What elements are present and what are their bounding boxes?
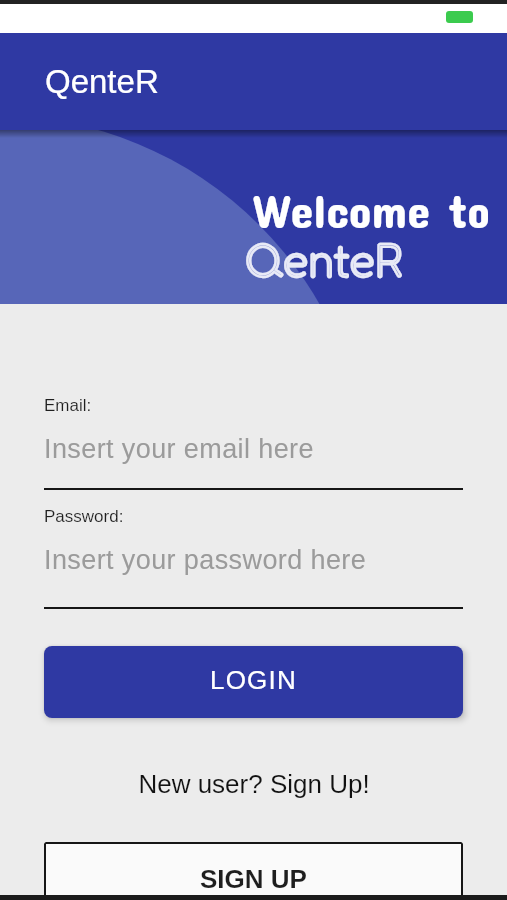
staticText: Password:	[44, 507, 124, 526]
staticText: QenteR	[246, 231, 404, 287]
staticText: QenteR	[45, 63, 159, 100]
button[interactable]: Email:	[44, 396, 463, 490]
staticText: Email:	[44, 396, 92, 415]
button[interactable]: LOGIN	[44, 646, 463, 718]
staticText: Insert your email here	[44, 434, 314, 464]
staticText: SIGN UP	[200, 864, 307, 893]
button[interactable]: SIGN UP	[44, 842, 463, 900]
staticText: Welcome to	[253, 183, 490, 237]
staticText: LOGIN	[210, 665, 297, 694]
button[interactable]: Password:	[44, 507, 463, 609]
staticText: Insert your password here	[44, 545, 367, 575]
button[interactable]: New user? Sign Up!	[44, 769, 463, 798]
staticText: New user? Sign Up!	[138, 769, 370, 798]
